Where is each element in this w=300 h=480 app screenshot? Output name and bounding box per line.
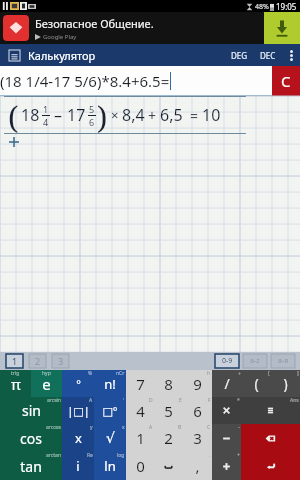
staticText: 4 (136, 401, 145, 421)
button[interactable]: x (94, 424, 126, 452)
staticText: x (122, 424, 125, 431)
staticText: Google Play (43, 33, 77, 41)
staticText: i (76, 457, 80, 475)
staticText: 9 (193, 374, 202, 394)
staticText: trig (11, 370, 20, 377)
staticText: arcsin (47, 397, 61, 404)
staticText: a-z (250, 356, 260, 366)
button[interactable]: log (94, 452, 126, 480)
button[interactable]: . (183, 452, 212, 480)
button[interactable]: Re (62, 452, 94, 480)
button[interactable]: 8 (154, 370, 183, 397)
button[interactable]: arctan (0, 452, 62, 480)
button[interactable]: Space (154, 452, 183, 480)
staticText: 19:05 (276, 1, 297, 12)
staticText: ) (97, 97, 108, 133)
staticText: * (237, 397, 240, 404)
button[interactable]: h (183, 370, 212, 397)
button[interactable]: Enter (241, 452, 300, 480)
button[interactable]: Minus (212, 424, 241, 452)
staticText: [ (268, 370, 270, 377)
button[interactable]: DEG (225, 46, 254, 65)
button[interactable]: ÷ (212, 370, 242, 397)
button[interactable]: hyp (31, 370, 62, 397)
button[interactable]: trig (0, 370, 31, 397)
staticText: × (111, 106, 119, 124)
button[interactable]: DEC (254, 46, 282, 65)
staticText: 0 (136, 456, 145, 476)
button[interactable]: Plus (212, 452, 241, 480)
staticText: tan (20, 457, 42, 476)
staticText: ° (76, 376, 81, 391)
button[interactable]: а-я (271, 354, 295, 368)
button[interactable]: % (62, 370, 94, 397)
staticText: ' (123, 397, 125, 404)
staticText: x (75, 429, 82, 447)
staticText: DEG (231, 50, 248, 61)
staticText: □° (102, 403, 118, 418)
staticText: log (117, 452, 125, 459)
staticText: Безопасное Общение. (35, 16, 154, 31)
staticText: 18 (21, 104, 40, 126)
button[interactable]: Menu (0, 44, 28, 66)
button[interactable]: Equals (241, 397, 300, 424)
button[interactable]: C (183, 424, 212, 452)
staticText: 3 (58, 355, 64, 367)
staticText: = (190, 106, 199, 125)
button[interactable]: ' (94, 397, 126, 424)
button[interactable]: C (272, 66, 300, 96)
staticText: B (178, 424, 182, 431)
button[interactable]: arccos (0, 424, 62, 452)
staticText: 0-9 (222, 356, 233, 366)
button[interactable]: 3 (52, 354, 69, 368)
staticText: DEC (260, 50, 276, 61)
staticText: ( (8, 97, 19, 133)
button[interactable]: (18 1/4-17 5/6)*8.4+6.5= (0, 66, 272, 96)
staticText: 5 (164, 401, 173, 421)
button[interactable]: More options (282, 44, 300, 66)
button[interactable]: Multiply (212, 397, 241, 424)
staticText: Калькулятор (28, 48, 96, 63)
staticText: - (238, 424, 240, 431)
staticText: hyp (42, 370, 51, 377)
staticText: (18 1/4-17 5/6)*8.4+6.5= (0, 71, 170, 91)
button[interactable]: D (126, 397, 154, 424)
button[interactable]: Backspace (241, 424, 300, 452)
staticText: arccos (46, 424, 61, 431)
staticText: |□| (67, 403, 90, 418)
staticText: 6 (89, 116, 95, 128)
button[interactable]: y (62, 424, 94, 452)
staticText: , (195, 456, 200, 476)
staticText: A (149, 424, 153, 431)
staticText: / (224, 374, 230, 393)
button[interactable]: 2 (29, 354, 46, 368)
button[interactable]: 0-9 (215, 354, 239, 368)
button[interactable]: Безопасное Общение. (0, 12, 300, 44)
button[interactable]: A (62, 397, 94, 424)
button[interactable]: F (183, 397, 212, 424)
staticText: n! (104, 375, 116, 393)
staticText: 3 (193, 428, 202, 448)
staticText: ) (283, 374, 288, 393)
button[interactable]: [ (242, 370, 271, 397)
staticText: √ (106, 430, 115, 446)
button[interactable]: 7 (126, 370, 154, 397)
button[interactable]: nCr (94, 370, 126, 397)
button[interactable]: ] (271, 370, 300, 397)
button[interactable]: Install (264, 12, 300, 44)
staticText: 7 (136, 374, 145, 394)
staticText: ÷ (238, 370, 241, 377)
button[interactable]: arcsin (0, 397, 62, 424)
staticText: y (90, 424, 93, 431)
staticText: C (207, 424, 211, 431)
button[interactable]: B (154, 424, 183, 452)
button[interactable]: 0 (126, 452, 154, 480)
button[interactable]: A (126, 424, 154, 452)
button[interactable]: E (154, 397, 183, 424)
button[interactable]: a-z (243, 354, 267, 368)
staticText: 1 (12, 355, 18, 367)
staticText: π (11, 374, 21, 394)
button[interactable]: Add (9, 137, 19, 147)
button[interactable]: 1 (6, 354, 23, 368)
staticText: + (237, 452, 240, 459)
